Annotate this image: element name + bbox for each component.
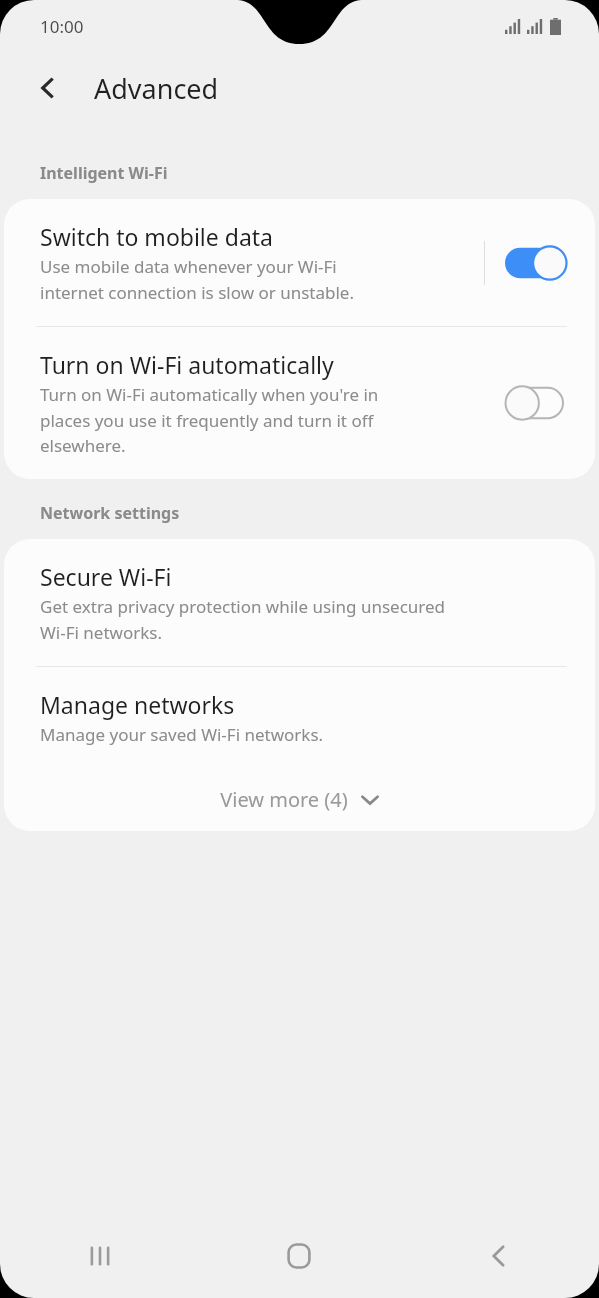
staticText: Turn on Wi-Fi automatically when you're … xyxy=(40,383,379,457)
button[interactable]: Recents xyxy=(0,1214,199,1298)
staticText: 10:00 xyxy=(40,15,84,38)
staticText: Turn on Wi-Fi automatically xyxy=(40,349,334,380)
staticText: Secure Wi-Fi xyxy=(40,561,172,592)
button[interactable]: Turn on Wi-Fi automatically xyxy=(4,327,595,479)
button[interactable]: View more (4) xyxy=(4,768,595,831)
staticText: Manage networks xyxy=(40,689,235,720)
button[interactable]: Toggle off xyxy=(505,382,567,424)
button[interactable]: Toggle on xyxy=(505,242,567,284)
button[interactable]: Secure Wi-Fi xyxy=(4,539,595,666)
staticText: Use mobile data whenever your Wi-Fi inte… xyxy=(40,255,354,304)
button[interactable]: Switch to mobile data xyxy=(4,199,595,326)
staticText: Switch to mobile data xyxy=(40,221,274,252)
button[interactable]: Back xyxy=(399,1214,599,1298)
staticText: View more (4) xyxy=(220,786,348,813)
button[interactable]: Back xyxy=(24,64,72,112)
staticText: Advanced xyxy=(94,70,219,107)
staticText: Network settings xyxy=(40,502,180,524)
button[interactable]: Manage networks xyxy=(4,667,595,768)
staticText: Get extra privacy protection while using… xyxy=(40,595,446,644)
staticText: Manage your saved Wi-Fi networks. xyxy=(40,723,324,746)
staticText: Intelligent Wi-Fi xyxy=(40,162,168,184)
button[interactable]: Home xyxy=(199,1214,399,1298)
